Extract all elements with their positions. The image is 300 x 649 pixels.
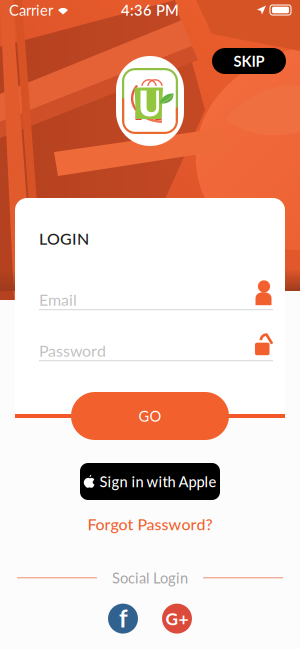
staticText: G+ [165,608,188,629]
button[interactable]: Sign in with Apple [80,463,220,500]
button[interactable]: Forgot Password? [87,512,212,536]
staticText: Password [39,341,106,360]
staticText: LOGIN [39,229,89,248]
staticText: 4:36 PM [121,1,179,19]
staticText: Social Login [112,569,188,587]
button[interactable]: Sign in with Facebook [108,604,138,634]
staticText: SKIP [233,52,264,70]
staticText: Email [39,290,77,309]
staticText: GO [138,407,161,425]
button[interactable]: SKIP [212,48,286,74]
button[interactable]: GO [71,392,229,440]
staticText: f [119,604,128,632]
staticText: Forgot Password? [87,514,212,534]
staticText: Carrier [9,1,53,19]
button[interactable]: Sign in with Google [162,604,192,634]
staticText: Sign in with Apple [99,473,216,490]
